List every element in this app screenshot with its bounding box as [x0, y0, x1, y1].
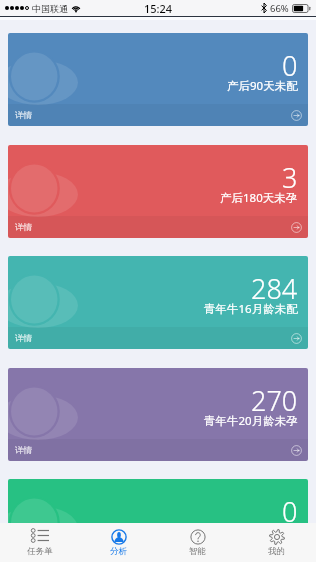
staticText: 我的	[268, 546, 285, 557]
staticText: 分析	[110, 546, 127, 557]
staticText: 智能	[189, 546, 206, 557]
button[interactable]: 284	[8, 256, 308, 349]
button[interactable]: 3	[8, 145, 308, 238]
staticText: 详情	[15, 110, 32, 121]
button[interactable]: 270	[8, 368, 308, 461]
staticText: 青年牛16月龄未配	[204, 301, 298, 317]
staticText: 中国联通	[32, 3, 68, 14]
staticText: 青年牛20月龄未孕	[204, 413, 298, 429]
staticText: 产后90天未配	[227, 78, 298, 94]
staticText: 详情	[15, 333, 32, 344]
staticText: 任务单	[27, 546, 53, 557]
staticText: 详情	[15, 445, 32, 456]
button[interactable]: 0	[8, 479, 308, 523]
button[interactable]: 0	[8, 33, 308, 126]
staticText: 284	[251, 270, 298, 307]
staticText: 0	[282, 47, 298, 84]
button[interactable]: 智能	[158, 523, 237, 562]
button[interactable]: 分析	[79, 523, 158, 562]
staticText: 270	[251, 382, 298, 419]
staticText: 0	[282, 493, 298, 523]
button[interactable]: 任务单	[0, 523, 79, 562]
staticText: 66%	[270, 2, 289, 15]
staticText: 3	[282, 159, 298, 196]
staticText: 详情	[15, 222, 32, 233]
button[interactable]: 我的	[237, 523, 316, 562]
staticText: 产后180天未孕	[220, 190, 298, 206]
staticText: 15:24	[144, 1, 173, 16]
